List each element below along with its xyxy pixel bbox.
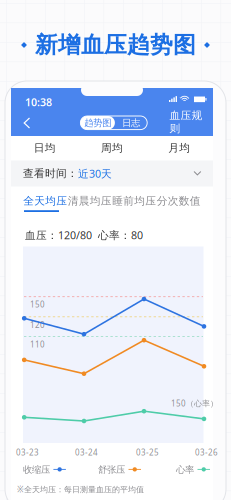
staticText: 月均 (168, 141, 190, 154)
staticText: 趋势图 (84, 117, 111, 129)
button[interactable]: 趋势图 (80, 116, 115, 130)
button[interactable]: 日均 (11, 136, 78, 160)
staticText: 收缩压 (23, 464, 50, 475)
staticText: 10:38 (25, 95, 52, 109)
staticText: 近30天 (78, 166, 112, 181)
staticText: 查看时间： (23, 167, 78, 180)
staticText: 110 (30, 339, 45, 350)
staticText: 血压规则 (169, 109, 202, 135)
button[interactable]: 清晨均压 (67, 190, 112, 212)
staticText: 03-24 (75, 447, 98, 458)
staticText: 全天均压 (23, 194, 67, 207)
staticText: 03-23 (16, 447, 39, 458)
button[interactable]: 周均 (78, 136, 146, 160)
button[interactable]: 返回 (18, 114, 36, 132)
staticText: 150（心率） (171, 398, 218, 409)
button[interactable]: 查看时间： (23, 160, 201, 186)
staticText: ※全天均压：每日测量血压的平均值 (17, 484, 144, 495)
staticText: 03-26 (195, 447, 218, 458)
staticText: 日志 (122, 117, 140, 129)
staticText: 120 (30, 319, 45, 330)
staticText: 03-25 (136, 447, 159, 458)
staticText: 心率：80 (92, 228, 143, 242)
staticText: 分次数值 (157, 194, 201, 207)
staticText: 血压：120/80 (25, 228, 92, 242)
button[interactable]: 血压规则 (166, 115, 206, 129)
button[interactable]: 分次数值 (156, 190, 201, 212)
staticText: 150 (30, 299, 45, 310)
button[interactable]: 日志 (115, 116, 147, 130)
button[interactable]: 睡前均压 (112, 190, 156, 212)
staticText: 睡前均压 (112, 194, 156, 207)
staticText: 新增血压趋势图 (35, 31, 196, 59)
staticText: 清晨均压 (68, 194, 112, 207)
staticText: 日均 (34, 141, 56, 154)
button[interactable]: 月均 (146, 136, 213, 160)
staticText: 舒张压 (98, 464, 125, 475)
button[interactable]: 全天均压 (23, 190, 67, 212)
staticText: 心率 (176, 464, 194, 475)
staticText: 周均 (101, 141, 123, 154)
